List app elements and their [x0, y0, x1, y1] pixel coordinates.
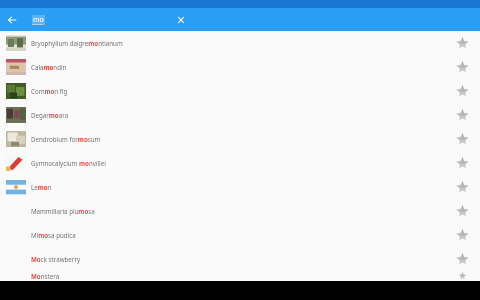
staticText: Mock strawberry: [31, 255, 81, 263]
button[interactable]: Add Lemon to favourites: [450, 175, 474, 199]
button[interactable]: Calamondin: [0, 55, 480, 79]
button[interactable]: Gymnocalycium monvillei: [0, 151, 480, 175]
staticText: Mammillaria plumosa: [31, 207, 95, 215]
staticText: Lemon: [31, 183, 52, 191]
button[interactable]: Mammillaria plumosa: [0, 199, 480, 223]
button[interactable]: Add Dendrobium formosum to favourites: [450, 127, 474, 151]
staticText: Common fig: [31, 87, 68, 95]
button[interactable]: Add Calamondin to favourites: [450, 55, 474, 79]
button[interactable]: Bryophyllum daigremontianum: [0, 31, 480, 55]
staticText: Mimosa pudica: [31, 231, 76, 239]
button[interactable]: Clear query: [169, 8, 193, 31]
button[interactable]: Monstera: [0, 271, 480, 281]
staticText: Gymnocalycium monvillei: [31, 159, 106, 167]
button[interactable]: Lemon: [0, 175, 480, 199]
button[interactable]: Degarmoara: [0, 103, 480, 127]
button[interactable]: Mock strawberry: [0, 247, 480, 271]
button[interactable]: Add Mimosa pudica to favourites: [450, 223, 474, 247]
button[interactable]: Add Mock strawberry to favourites: [450, 247, 474, 271]
button[interactable]: Mimosa pudica: [0, 223, 480, 247]
button[interactable]: Add Degarmoara to favourites: [450, 103, 474, 127]
button[interactable]: Add Gymnocalycium monvillei to favourite…: [450, 151, 474, 175]
staticText: Degarmoara: [31, 111, 69, 119]
staticText: Bryophyllum daigremontianum: [31, 39, 123, 47]
button[interactable]: Add Bryophyllum daigremontianum to favou…: [450, 31, 474, 55]
button[interactable]: mo: [32, 8, 169, 31]
button[interactable]: Dendrobium formosum: [0, 127, 480, 151]
staticText: Monstera: [31, 272, 60, 280]
button[interactable]: Add Mammillaria plumosa to favourites: [450, 199, 474, 223]
staticText: mo: [33, 15, 44, 25]
button[interactable]: Common fig: [0, 79, 480, 103]
button[interactable]: Navigate up: [0, 8, 24, 31]
button[interactable]: Add Common fig to favourites: [450, 79, 474, 103]
staticText: Dendrobium formosum: [31, 135, 101, 143]
button[interactable]: Add Monstera to favourites: [450, 271, 474, 281]
staticText: Calamondin: [31, 63, 67, 71]
